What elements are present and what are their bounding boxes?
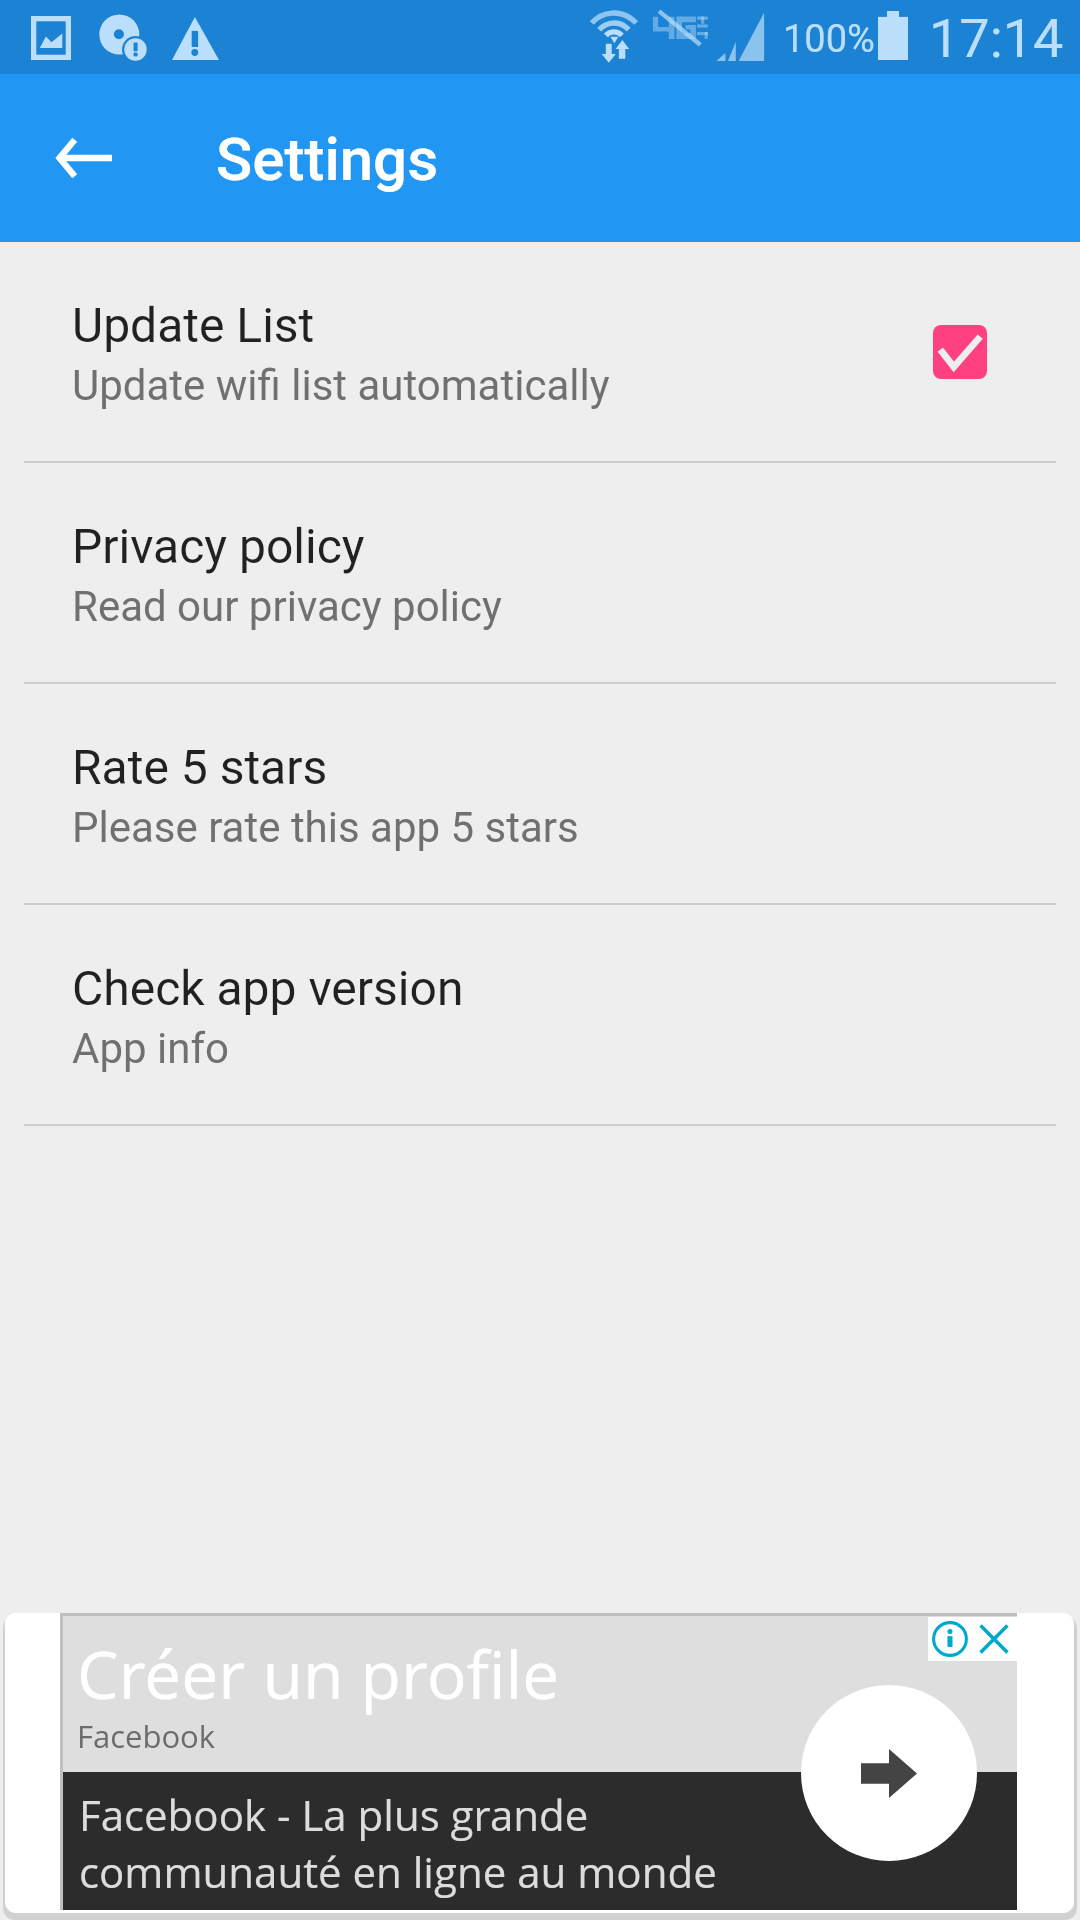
staticText: Please rate this app 5 stars bbox=[72, 803, 579, 852]
staticText: Créer un profile bbox=[77, 1628, 560, 1718]
button[interactable]: Update list toggle bbox=[933, 325, 987, 379]
staticText: Settings bbox=[216, 124, 439, 194]
staticText: Facebook - La plus grande bbox=[79, 1786, 589, 1843]
button[interactable]: Open advertisement bbox=[801, 1685, 977, 1861]
button[interactable]: Créer un profile bbox=[5, 1613, 1074, 1913]
staticText: 17:14 bbox=[929, 7, 1064, 70]
staticText: Read our privacy policy bbox=[72, 582, 502, 631]
staticText: Privacy policy bbox=[72, 518, 365, 574]
button[interactable]: Check app version bbox=[0, 905, 1080, 1124]
button[interactable]: Close ad bbox=[978, 1623, 1010, 1655]
staticText: Facebook bbox=[77, 1715, 216, 1757]
staticText: Rate 5 stars bbox=[72, 739, 328, 795]
button[interactable]: Rate 5 stars bbox=[0, 684, 1080, 903]
staticText: App info bbox=[72, 1024, 229, 1073]
staticText: Check app version bbox=[72, 960, 464, 1016]
staticText: Update wifi list automatically bbox=[72, 361, 610, 410]
button[interactable]: Update List bbox=[0, 242, 1080, 461]
button[interactable]: Ad info bbox=[932, 1621, 968, 1657]
staticText: Update List bbox=[72, 297, 315, 353]
staticText: communauté en ligne au monde bbox=[79, 1843, 717, 1900]
button[interactable]: Back bbox=[36, 110, 132, 206]
button[interactable]: Privacy policy bbox=[0, 463, 1080, 682]
staticText: 100% bbox=[783, 17, 875, 62]
